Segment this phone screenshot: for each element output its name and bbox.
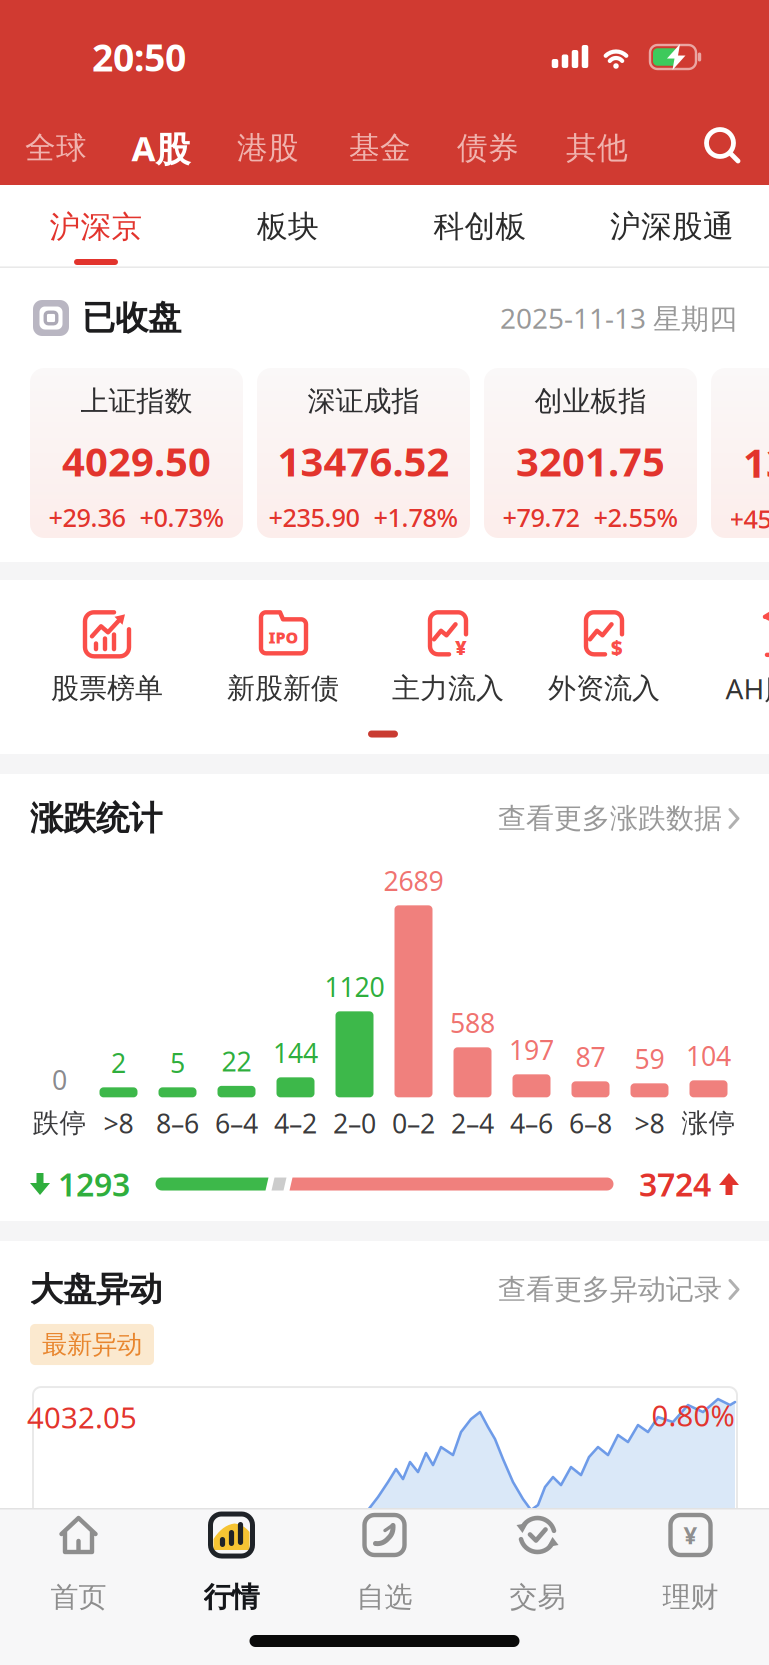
button[interactable]: 沪深京 <box>0 185 192 268</box>
button[interactable]: ¥ <box>614 1512 767 1622</box>
staticText: 查看更多异动记录 <box>498 1272 722 1307</box>
button[interactable]: 自选 <box>308 1512 461 1622</box>
staticText: 5 <box>170 1045 185 1080</box>
staticText: +79.72 +2.55% <box>502 500 678 534</box>
staticText: 4–2 <box>274 1105 317 1141</box>
button[interactable]: 搜索 <box>704 127 742 165</box>
button[interactable]: 债券 <box>457 129 519 167</box>
staticText: 大盘异动 <box>30 1269 162 1310</box>
staticText: 首页 <box>50 1580 106 1614</box>
staticText: 新股新债 <box>227 671 339 706</box>
staticText: 4032.05 <box>27 1398 137 1437</box>
staticText: $ <box>611 634 623 661</box>
staticText: 基金 <box>349 129 411 167</box>
staticText: 144 <box>273 1035 318 1070</box>
staticText: 8–6 <box>156 1105 199 1141</box>
button[interactable]: 创业板指 <box>484 368 697 538</box>
staticText: 已收盘 <box>82 297 181 338</box>
staticText: +235.90 +1.78% <box>268 500 458 534</box>
staticText: 59 <box>634 1041 664 1076</box>
staticText: 深证成指 <box>307 384 419 418</box>
staticText: 主力流入 <box>392 671 504 706</box>
staticText: 全球 <box>25 129 87 167</box>
button[interactable]: IPO <box>227 608 339 706</box>
staticText: 理财 <box>662 1580 718 1614</box>
button[interactable]: 沪深股通 <box>576 185 768 268</box>
staticText: 2–0 <box>333 1105 376 1141</box>
button[interactable]: ¥ <box>392 608 504 706</box>
staticText: 创业板指 <box>534 384 646 418</box>
button[interactable]: 首页 <box>2 1512 155 1622</box>
staticText: 4–6 <box>510 1105 553 1141</box>
button[interactable]: 科创板 <box>384 185 576 268</box>
staticText: 2–4 <box>451 1105 494 1141</box>
staticText: 行情 <box>203 1580 259 1614</box>
staticText: 3201.75 <box>516 434 665 487</box>
staticText: 股票榜单 <box>51 671 163 706</box>
staticText: IPO <box>268 627 298 648</box>
staticText: 沪深京 <box>49 208 142 246</box>
staticText: ¥ <box>683 1519 697 1551</box>
staticText: 588 <box>450 1005 495 1040</box>
staticText: 104 <box>686 1038 731 1073</box>
staticText: 22 <box>221 1043 251 1079</box>
staticText: 20:50 <box>92 32 186 82</box>
button[interactable]: 港股 <box>237 129 299 167</box>
staticText: 4029.50 <box>62 434 211 487</box>
staticText: 板块 <box>257 208 319 245</box>
staticText: +29.36 +0.73% <box>48 500 224 534</box>
staticText: 197 <box>509 1032 554 1067</box>
staticText: 债券 <box>457 129 519 167</box>
staticText: 0–2 <box>392 1105 435 1141</box>
button[interactable]: 其他 <box>566 129 628 167</box>
staticText: >8 <box>103 1105 133 1141</box>
staticText: 0.80% <box>651 1396 734 1435</box>
button[interactable]: 行情 <box>155 1512 308 1622</box>
staticText: 外资流入 <box>548 671 660 706</box>
staticText: AH股溢价 <box>725 670 769 707</box>
staticText: 科创板 <box>433 208 526 245</box>
staticText: 查看更多涨跌数据 <box>498 801 722 836</box>
button[interactable]: 查看更多异动记录 <box>498 1272 741 1307</box>
staticText: 交易 <box>509 1580 565 1614</box>
staticText: 3724 <box>639 1163 711 1205</box>
staticText: 2025-11-13 星期四 <box>500 299 737 337</box>
staticText: 2689 <box>383 863 443 898</box>
staticText: 2 <box>111 1045 126 1080</box>
staticText: 沪深股通 <box>610 208 734 245</box>
button[interactable]: 交易 <box>461 1512 614 1622</box>
staticText: 0 <box>52 1062 67 1097</box>
staticText: 1293 <box>58 1163 130 1205</box>
staticText: 自选 <box>356 1580 412 1614</box>
button[interactable]: 全球 <box>25 129 87 167</box>
staticText: 13476.52 <box>277 434 449 487</box>
staticText: 1120 <box>324 969 384 1004</box>
staticText: +45.86 +3.39% <box>729 502 769 535</box>
button[interactable]: $ <box>548 608 660 706</box>
staticText: 1399.66 <box>743 436 769 489</box>
button[interactable]: 股票榜单 <box>51 608 163 706</box>
staticText: 最新异动 <box>42 1329 142 1360</box>
button[interactable]: 科创50 <box>711 368 769 538</box>
staticText: 涨跌统计 <box>30 798 162 839</box>
staticText: 6–4 <box>215 1105 258 1141</box>
button[interactable]: A股 <box>131 125 190 171</box>
button[interactable]: 深证成指 <box>257 368 470 538</box>
staticText: 涨停 <box>681 1107 735 1139</box>
staticText: 6–8 <box>569 1105 612 1141</box>
staticText: >8 <box>634 1105 664 1141</box>
staticText: 跌停 <box>32 1107 86 1139</box>
button[interactable]: 查看更多涨跌数据 <box>498 801 741 836</box>
staticText: 港股 <box>237 129 299 167</box>
staticText: A股 <box>131 125 190 171</box>
staticText: 其他 <box>566 129 628 167</box>
button[interactable]: 基金 <box>349 129 411 167</box>
button[interactable]: A <box>725 607 769 707</box>
staticText: 87 <box>575 1039 605 1074</box>
staticText: 上证指数 <box>80 384 192 418</box>
button[interactable]: 上证指数 <box>30 368 243 538</box>
button[interactable]: 板块 <box>192 185 384 268</box>
staticText: ¥ <box>455 634 467 661</box>
